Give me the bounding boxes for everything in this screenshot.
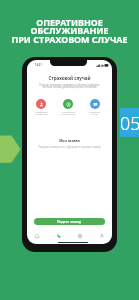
staticText: Написать в чат <box>89 110 101 116</box>
staticText: Страховой случай <box>27 75 112 81</box>
staticText: Текущих заявок нет, оформите первую заяв… <box>27 145 112 149</box>
staticText: Мои заявки <box>27 138 112 143</box>
other: Позвонить в кол-центр <box>63 99 73 109</box>
button[interactable]: Подать заявку <box>34 218 105 225</box>
staticText: 05 <box>120 111 139 135</box>
staticText: 14:21 <box>35 63 42 67</box>
staticText: ОПЕРАТИВНОЕ ОБСЛУЖИВАНИЕ ПРИ СТРАХОВОМ С… <box>11 16 128 45</box>
button[interactable]: Сообщить о событии <box>30 99 52 116</box>
button[interactable]: Позвонить в кол-центр <box>57 99 79 116</box>
button[interactable]: Documents <box>74 230 85 241</box>
other: Написать в чат <box>90 99 100 109</box>
staticText: Сообщить о событии <box>35 110 48 116</box>
button[interactable]: Profile <box>96 230 107 241</box>
button[interactable]: Calls <box>53 230 64 241</box>
staticText: Позвонить в кол-центр <box>61 110 76 116</box>
staticText: Подать заявку <box>57 219 82 224</box>
button[interactable]: Home <box>31 230 42 241</box>
other: Сообщить о событии <box>36 99 46 109</box>
staticText: При наступлении страхового события сообщ… <box>27 83 112 89</box>
button[interactable]: Написать в чат <box>84 99 106 116</box>
